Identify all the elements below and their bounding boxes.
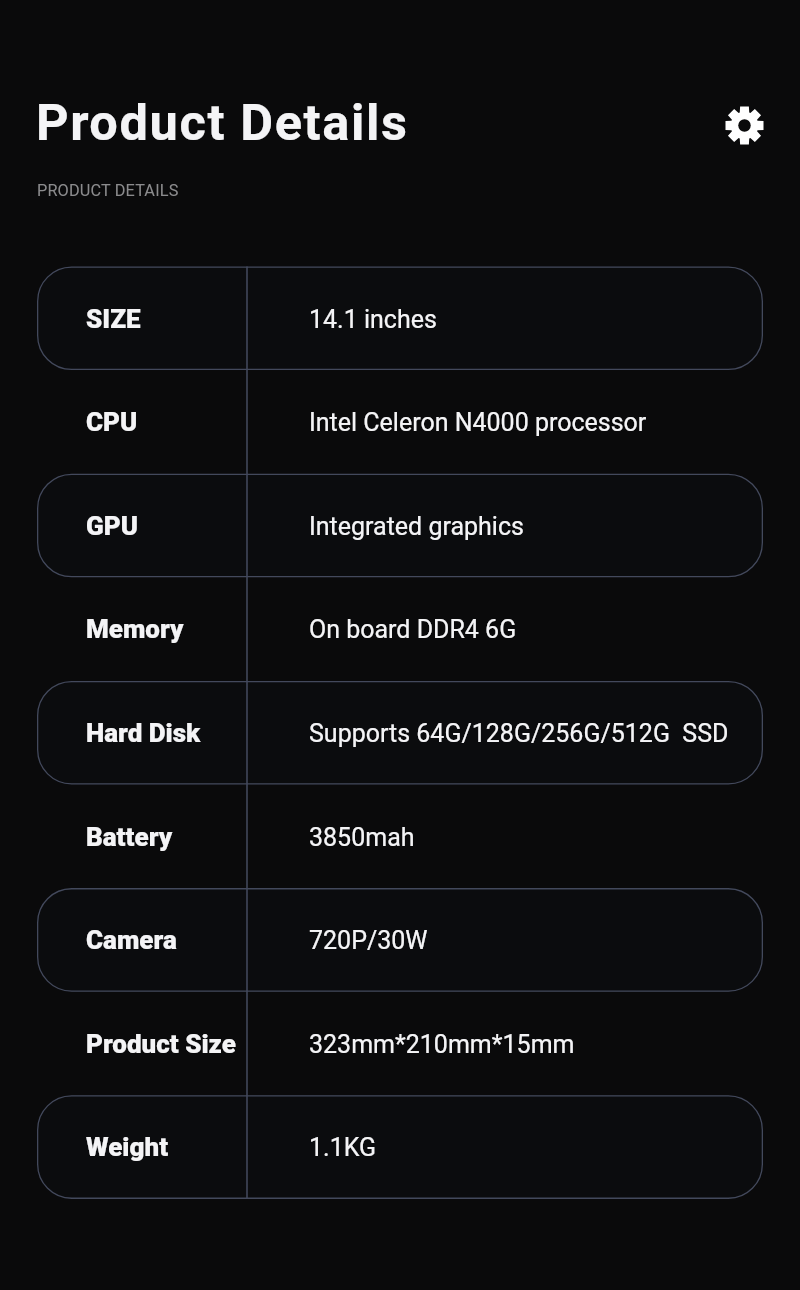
staticText: Product Details xyxy=(36,93,409,152)
staticText: Camera xyxy=(86,925,177,955)
staticText: Supports 64G/128G/256G/512G SSD xyxy=(309,719,729,748)
button[interactable]: GPU xyxy=(37,474,763,578)
staticText: Hard Disk xyxy=(86,718,201,748)
button[interactable]: Hard Disk xyxy=(37,681,763,785)
button[interactable]: Product Size xyxy=(37,992,763,1096)
staticText: Intel Celeron N4000 processor xyxy=(309,408,647,437)
staticText: Weight xyxy=(86,1132,169,1162)
staticText: 1.1KG xyxy=(309,1133,377,1162)
staticText: Integrated graphics xyxy=(309,512,524,541)
staticText: CPU xyxy=(86,407,138,437)
staticText: Battery xyxy=(86,822,173,852)
staticText: 720P/30W xyxy=(309,926,428,955)
button[interactable]: Weight xyxy=(37,1095,763,1199)
staticText: SIZE xyxy=(86,304,141,334)
staticText: PRODUCT DETAILS xyxy=(37,181,179,200)
button[interactable]: Settings xyxy=(722,103,767,148)
button[interactable]: Camera xyxy=(37,888,763,992)
staticText: Product Size xyxy=(86,1029,236,1059)
staticText: 3850mah xyxy=(309,823,415,852)
button[interactable]: Battery xyxy=(37,785,763,889)
button[interactable]: CPU xyxy=(37,370,763,474)
button[interactable]: SIZE xyxy=(37,267,763,371)
staticText: Memory xyxy=(86,614,184,644)
button[interactable]: Memory xyxy=(37,577,763,681)
staticText: 323mm*210mm*15mm xyxy=(309,1030,575,1059)
staticText: On board DDR4 6G xyxy=(309,615,517,644)
staticText: 14.1 inches xyxy=(309,305,437,334)
staticText: GPU xyxy=(86,511,138,541)
